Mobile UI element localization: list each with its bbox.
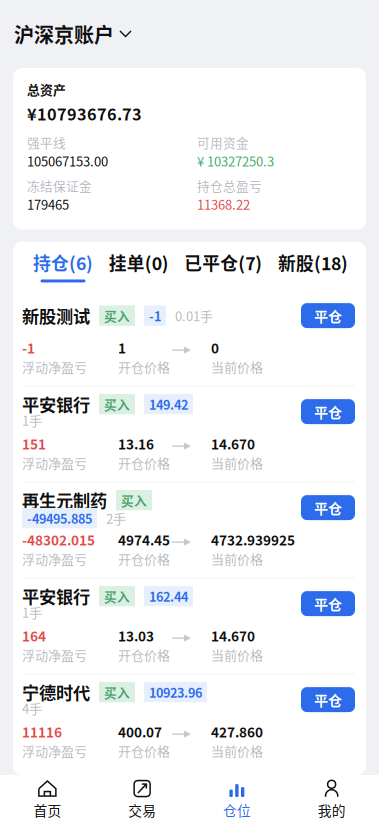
- staticText: 164: [22, 626, 46, 645]
- staticText: 买入: [104, 306, 130, 325]
- staticText: 平仓: [314, 305, 342, 326]
- staticText: 浮动净盈亏: [22, 453, 87, 472]
- staticText: -48302.015: [22, 530, 95, 549]
- staticText: 149.42: [149, 395, 188, 413]
- staticText: 14.670: [211, 434, 255, 453]
- staticText: 当前价格: [211, 741, 263, 760]
- staticText: 2手: [106, 509, 126, 528]
- staticText: 开仓价格: [118, 453, 170, 472]
- button[interactable]: 挂单(0): [109, 250, 169, 282]
- staticText: 平安银行: [22, 584, 90, 609]
- staticText: 当前价格: [211, 549, 263, 568]
- staticText: -1: [149, 306, 161, 325]
- staticText: 427.860: [211, 722, 263, 741]
- staticText: 开仓价格: [118, 645, 170, 664]
- staticText: 持仓总盈亏: [197, 176, 262, 195]
- staticText: 1手: [22, 603, 42, 622]
- staticText: 新股测试: [22, 303, 90, 328]
- button[interactable]: 已平仓(7): [184, 250, 262, 282]
- button[interactable]: 我的: [284, 773, 379, 825]
- staticText: 买入: [121, 491, 147, 509]
- staticText: 400.07: [118, 722, 162, 741]
- staticText: 151: [22, 434, 46, 453]
- staticText: 平仓: [314, 593, 342, 614]
- staticText: 沪深京账户: [14, 19, 114, 48]
- staticText: 浮动净盈亏: [22, 549, 87, 568]
- staticText: 浮动净盈亏: [22, 645, 87, 664]
- staticText: ¥ 10327250.3: [197, 151, 274, 170]
- staticText: 11368.22: [197, 195, 250, 214]
- button[interactable]: 新股测试: [13, 291, 366, 386]
- staticText: 挂单(0): [109, 250, 169, 275]
- staticText: 当前价格: [211, 645, 263, 664]
- staticText: 宁德时代: [22, 680, 90, 705]
- staticText: 买入: [104, 395, 130, 413]
- staticText: 4手: [22, 699, 42, 718]
- staticText: 强平线: [27, 133, 66, 151]
- staticText: 179465: [27, 195, 69, 214]
- staticText: 平仓: [314, 497, 342, 518]
- staticText: 浮动净盈亏: [22, 741, 87, 760]
- button[interactable]: 平安银行: [13, 579, 366, 674]
- staticText: 4732.939925: [211, 530, 295, 549]
- staticText: -49495.885: [27, 509, 92, 527]
- staticText: 可用资金: [197, 133, 249, 151]
- button[interactable]: 新股(18): [278, 250, 348, 282]
- staticText: 开仓价格: [118, 357, 170, 376]
- staticText: 仓位: [223, 800, 251, 820]
- staticText: 162.44: [149, 587, 188, 605]
- staticText: 再生元制药: [22, 488, 107, 513]
- staticText: 平安银行: [22, 392, 90, 417]
- button[interactable]: 交易: [95, 773, 190, 825]
- staticText: 当前价格: [211, 357, 263, 376]
- staticText: 0: [211, 338, 219, 357]
- staticText: 0.01手: [175, 306, 213, 325]
- staticText: 首页: [33, 800, 61, 820]
- staticText: 已平仓(7): [184, 250, 262, 275]
- button[interactable]: 首页: [0, 773, 95, 825]
- staticText: 13.16: [118, 434, 154, 453]
- staticText: 平仓: [314, 401, 342, 422]
- staticText: 11116: [22, 722, 62, 741]
- staticText: 浮动净盈亏: [22, 357, 87, 376]
- staticText: -1: [22, 338, 35, 357]
- staticText: 总资产: [27, 80, 66, 98]
- button[interactable]: 持仓(6): [33, 250, 93, 282]
- staticText: 买入: [104, 683, 130, 701]
- staticText: 13.03: [118, 626, 154, 645]
- staticText: 1: [118, 338, 126, 357]
- staticText: 当前价格: [211, 453, 263, 472]
- staticText: 开仓价格: [118, 549, 170, 568]
- staticText: 14.670: [211, 626, 255, 645]
- staticText: 4974.45: [118, 530, 170, 549]
- staticText: 10923.96: [149, 683, 202, 701]
- staticText: 新股(18): [278, 250, 348, 275]
- button[interactable]: 再生元制药: [13, 483, 366, 578]
- button[interactable]: 仓位: [189, 773, 284, 825]
- staticText: 冻结保证金: [27, 176, 92, 195]
- staticText: 交易: [128, 800, 156, 820]
- button[interactable]: 平安银行: [13, 387, 366, 482]
- staticText: ¥10793676.73: [27, 101, 142, 125]
- staticText: 1手: [22, 411, 42, 430]
- staticText: 买入: [104, 587, 130, 605]
- button[interactable]: 宁德时代: [13, 675, 366, 770]
- staticText: 开仓价格: [118, 741, 170, 760]
- button[interactable]: 沪深京账户: [14, 19, 132, 48]
- staticText: 平仓: [314, 689, 342, 710]
- staticText: 持仓(6): [33, 250, 93, 275]
- staticText: 我的: [318, 800, 346, 820]
- staticText: 105067153.00: [27, 151, 108, 170]
